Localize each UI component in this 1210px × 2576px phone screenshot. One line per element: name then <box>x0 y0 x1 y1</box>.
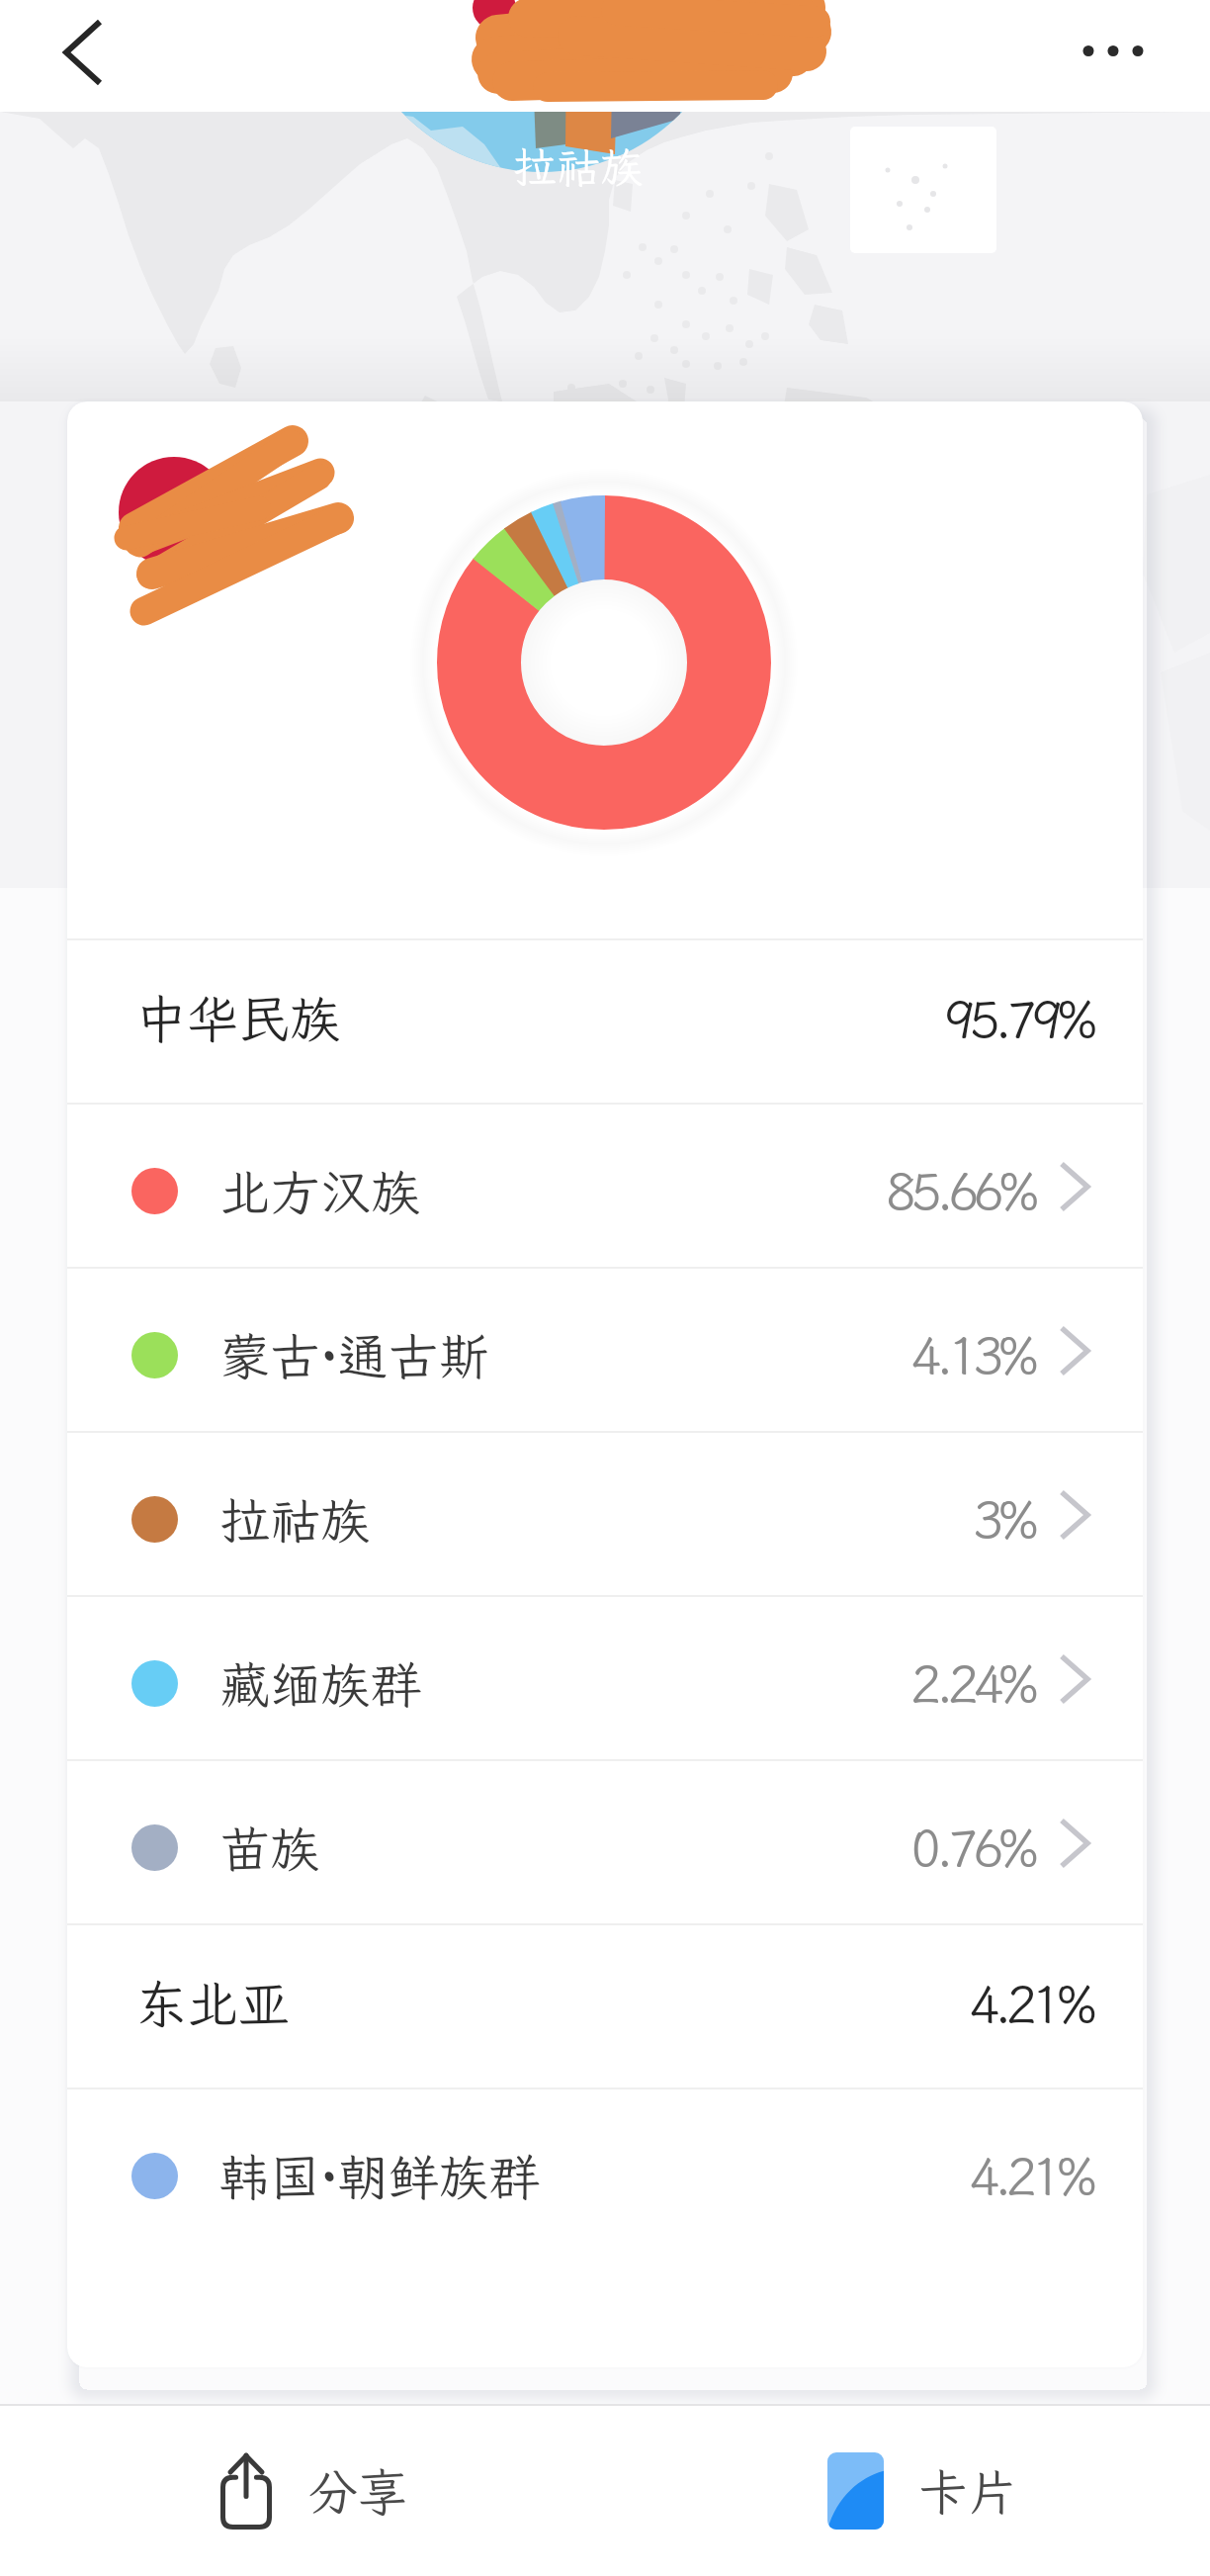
staticText: 0.76% <box>910 1813 1034 1880</box>
staticText: 4.13% <box>910 1320 1034 1387</box>
button[interactable]: 卡片 <box>798 2406 1035 2576</box>
button[interactable]: 拉祜族 <box>67 1433 1143 1595</box>
staticText: 分享 <box>308 2458 407 2524</box>
staticText: 3% <box>973 1484 1034 1552</box>
staticText: 拉祜族 <box>219 1486 372 1553</box>
button[interactable]: 韩国·朝鲜族群 <box>67 2089 1143 2252</box>
staticText: 卡片 <box>918 2458 1017 2524</box>
staticText: 藏缅族群 <box>219 1650 422 1717</box>
button[interactable]: More options <box>1054 0 1172 112</box>
button[interactable]: 苗族 <box>67 1761 1143 1923</box>
staticText: 中华民族 <box>135 984 342 1051</box>
button[interactable]: 藏缅族群 <box>67 1597 1143 1759</box>
button[interactable]: 分享 <box>191 2406 430 2576</box>
staticText: 4.21% <box>969 1969 1092 2036</box>
staticText: 4.21% <box>969 2141 1092 2208</box>
staticText: 85.66% <box>886 1156 1034 1223</box>
button[interactable]: 北方汉族 <box>67 1105 1143 1267</box>
button[interactable]: 蒙古·通古斯 <box>67 1269 1143 1431</box>
button[interactable]: Back <box>47 0 150 112</box>
staticText: 东北亚 <box>135 1969 291 2036</box>
staticText: 95.79% <box>944 984 1092 1051</box>
button[interactable]: 东北亚 <box>67 1925 1143 2087</box>
staticText: 苗族 <box>219 1815 321 1881</box>
button[interactable]: 中华民族 <box>67 940 1143 1103</box>
staticText: 北方汉族 <box>219 1158 422 1224</box>
staticText: 拉祜族 <box>513 138 644 196</box>
staticText: 蒙古·通古斯 <box>219 1322 489 1388</box>
staticText: 韩国·朝鲜族群 <box>219 2143 540 2209</box>
staticText: 2.24% <box>910 1648 1034 1716</box>
